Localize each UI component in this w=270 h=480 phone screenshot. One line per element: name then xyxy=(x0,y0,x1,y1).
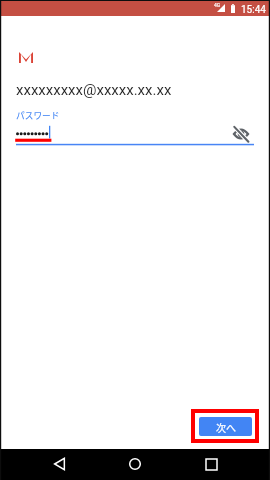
button[interactable]: Back xyxy=(45,450,73,478)
button[interactable]: 次へ xyxy=(199,417,252,436)
button[interactable]: Show password xyxy=(233,126,249,142)
staticText: 4G xyxy=(214,2,221,8)
button[interactable]: Home xyxy=(121,450,149,478)
staticText: 次へ xyxy=(216,420,236,434)
staticText: xxxxxxxxx@xxxxx.xx.xx xyxy=(16,81,172,99)
staticText: 15:44 xyxy=(241,4,266,16)
button[interactable]: Recent apps xyxy=(197,450,225,478)
staticText: パスワード xyxy=(16,109,60,122)
